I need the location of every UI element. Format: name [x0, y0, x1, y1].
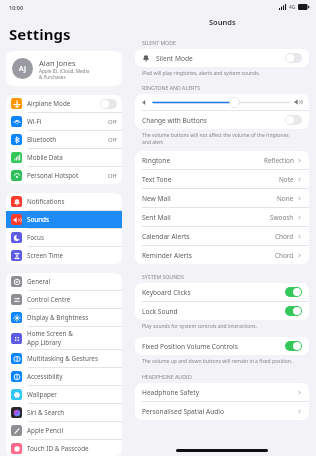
- button[interactable]: General: [6, 273, 122, 290]
- staticText: SYSTEM SOUNDS: [142, 273, 184, 280]
- button[interactable]: Wi-Fi: [6, 113, 122, 130]
- staticText: Ringtone: [142, 156, 264, 165]
- staticText: & Purchases: [39, 74, 66, 80]
- button[interactable]: Toggle off: [100, 99, 117, 109]
- button[interactable]: New Mail: [135, 189, 309, 207]
- button[interactable]: AJ: [6, 51, 122, 86]
- button[interactable]: Control Centre: [6, 291, 122, 308]
- staticText: Settings: [9, 24, 71, 44]
- button[interactable]: Wallpaper: [6, 386, 122, 403]
- staticText: Reflection: [264, 156, 294, 165]
- staticText: Calendar Alerts: [142, 232, 275, 241]
- staticText: Off: [108, 172, 117, 180]
- staticText: Multitasking & Gestures: [27, 354, 98, 363]
- staticText: Play sounds for system controls and inte…: [142, 323, 258, 330]
- staticText: 10:00: [9, 4, 24, 11]
- staticText: Home Screen &: [27, 329, 73, 338]
- staticText: Siri & Search: [27, 408, 65, 417]
- staticText: Lock Sound: [142, 307, 285, 316]
- staticText: New Mail: [142, 194, 277, 203]
- button[interactable]: Home Screen &: [6, 327, 122, 349]
- staticText: Off: [108, 118, 117, 126]
- button[interactable]: Keyboard Clicks: [135, 283, 309, 301]
- button[interactable]: Personalised Spatial Audio: [135, 402, 309, 420]
- staticText: Sounds: [27, 215, 49, 224]
- staticText: The volume up and down buttons will rema…: [142, 358, 293, 365]
- staticText: Notifications: [27, 197, 65, 206]
- button[interactable]: Calendar Alerts: [135, 227, 309, 245]
- staticText: Bluetooth: [27, 135, 57, 144]
- button[interactable]: Toggle off: [285, 115, 302, 125]
- staticText: Apple Pencil: [27, 426, 64, 435]
- button[interactable]: Multitasking & Gestures: [6, 350, 122, 367]
- button[interactable]: Accessibility: [6, 368, 122, 385]
- button[interactable]: Silent Mode: [135, 49, 309, 67]
- button[interactable]: Touch ID & Passcode: [6, 440, 122, 456]
- staticText: Control Centre: [27, 295, 71, 304]
- staticText: Fixed Position Volume Controls: [142, 342, 285, 351]
- button[interactable]: Mobile Data: [6, 149, 122, 166]
- staticText: SILENT MODE: [142, 39, 176, 46]
- button[interactable]: Toggle off: [285, 53, 302, 63]
- staticText: HEADPHONE AUDIO: [142, 373, 192, 380]
- staticText: Off: [108, 136, 117, 144]
- staticText: Text Tone: [142, 175, 279, 184]
- staticText: Swoosh: [270, 213, 294, 222]
- button[interactable]: Airplane Mode: [6, 95, 122, 112]
- button[interactable]: Headphone Safety: [135, 383, 309, 401]
- staticText: App Library: [27, 338, 62, 347]
- staticText: Note: [279, 175, 294, 184]
- staticText: Airplane Mode: [27, 99, 71, 108]
- button[interactable]: Lock Sound: [135, 302, 309, 320]
- button[interactable]: Ringtone: [135, 151, 309, 169]
- staticText: RINGTONE AND ALERTS: [142, 84, 200, 91]
- button[interactable]: Sounds: [6, 211, 122, 228]
- staticText: Wi-Fi: [27, 117, 42, 126]
- button[interactable]: Toggle on: [285, 287, 302, 297]
- staticText: Mobile Data: [27, 153, 63, 162]
- staticText: Display & Brightness: [27, 313, 89, 322]
- button[interactable]: Screen Time: [6, 247, 122, 264]
- staticText: General: [27, 277, 51, 286]
- button[interactable]: Display & Brightness: [6, 309, 122, 326]
- button[interactable]: Toggle on: [285, 306, 302, 316]
- staticText: Touch ID & Passcode: [27, 444, 89, 453]
- staticText: Silent Mode: [156, 54, 285, 63]
- staticText: Alan Jones: [39, 58, 76, 68]
- staticText: Reminder Alerts: [142, 251, 275, 260]
- button[interactable]: Bluetooth: [6, 131, 122, 148]
- button[interactable]: Notifications: [6, 193, 122, 210]
- staticText: iPad will play ringtones, alerts and sys…: [142, 70, 261, 77]
- staticText: Keyboard Clicks: [142, 288, 285, 297]
- button[interactable]: Focus: [6, 229, 122, 246]
- button[interactable]: Fixed Position Volume Controls: [135, 337, 309, 355]
- button[interactable]: Text Tone: [135, 170, 309, 188]
- staticText: Personalised Spatial Audio: [142, 407, 297, 416]
- staticText: Focus: [27, 233, 45, 242]
- staticText: None: [277, 194, 294, 203]
- staticText: Headphone Safety: [142, 388, 297, 397]
- staticText: Sounds: [209, 17, 236, 27]
- button[interactable]: Toggle on: [285, 341, 302, 351]
- staticText: Change with Buttons: [142, 116, 285, 125]
- button[interactable]: Sent Mail: [135, 208, 309, 226]
- staticText: Sent Mail: [142, 213, 270, 222]
- staticText: 4G: [289, 4, 296, 11]
- staticText: Personal Hotspot: [27, 171, 79, 180]
- staticText: AJ: [19, 64, 26, 74]
- button[interactable]: Apple Pencil: [6, 422, 122, 439]
- staticText: Wallpaper: [27, 390, 57, 399]
- staticText: Apple ID, iCloud, Media: [39, 68, 90, 74]
- staticText: The volume buttons will not affect the v…: [142, 132, 289, 145]
- button[interactable]: Change with Buttons: [135, 111, 309, 129]
- staticText: Accessibility: [27, 372, 63, 381]
- button[interactable]: Personal Hotspot: [6, 167, 122, 184]
- staticText: Chord: [275, 232, 294, 241]
- button[interactable]: Reminder Alerts: [135, 246, 309, 264]
- staticText: Chord: [275, 251, 294, 260]
- button[interactable]: Siri & Search: [6, 404, 122, 421]
- staticText: Screen Time: [27, 251, 64, 260]
